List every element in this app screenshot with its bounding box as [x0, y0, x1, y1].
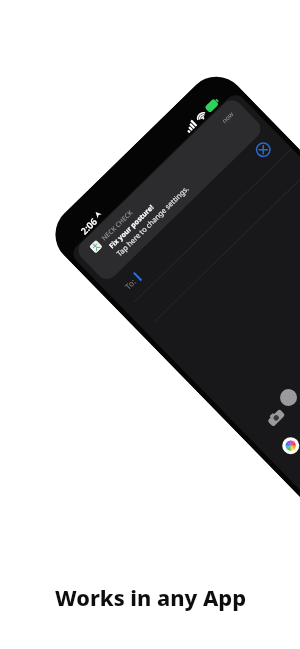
button[interactable]: Photos — [279, 434, 300, 458]
button[interactable]: Markup — [276, 385, 300, 409]
staticText: NECK CHECK — [99, 207, 135, 243]
staticText: now — [220, 109, 236, 125]
button[interactable]: Close — [250, 137, 275, 162]
staticText: 2:06 — [78, 215, 100, 237]
button[interactable]: NECK CHECK — [74, 96, 265, 284]
staticText: Tap here to change settings. — [114, 183, 191, 258]
button[interactable]: Camera — [263, 404, 290, 431]
staticText: To: — [122, 276, 138, 292]
staticText: Fix your posture! — [107, 203, 156, 251]
staticText: Works in any App — [55, 583, 246, 613]
